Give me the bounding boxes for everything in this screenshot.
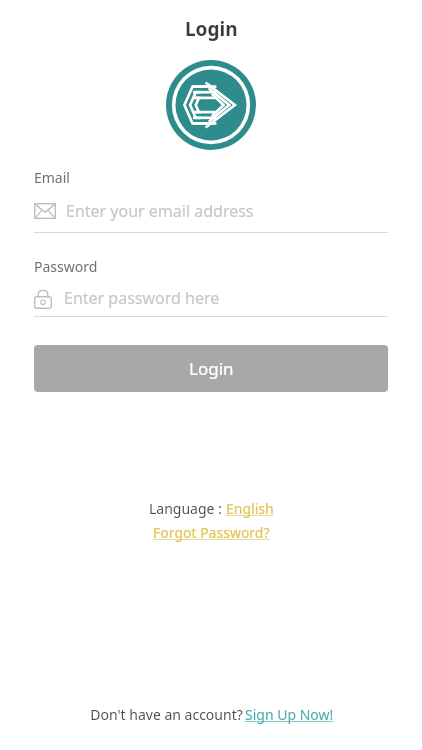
button[interactable]: Forgot Password?: [153, 523, 270, 542]
staticText: Language :: [149, 499, 226, 518]
staticText: Login: [189, 357, 234, 380]
staticText: Enter your email address: [66, 200, 254, 222]
staticText: Login: [185, 16, 238, 42]
button[interactable]: English: [226, 499, 274, 518]
staticText: Enter password here: [64, 287, 220, 309]
button[interactable]: Login: [34, 345, 388, 392]
button[interactable]: Sign Up Now!: [245, 705, 334, 724]
staticText: English: [226, 499, 274, 518]
staticText: Email: [34, 168, 70, 187]
staticText: Sign Up Now!: [245, 705, 334, 724]
button[interactable]: Enter password here: [34, 286, 388, 310]
staticText: Don't have an account?: [88, 705, 245, 724]
staticText: Password: [34, 257, 98, 276]
button[interactable]: Enter your email address: [34, 197, 388, 225]
staticText: Forgot Password?: [153, 523, 270, 542]
